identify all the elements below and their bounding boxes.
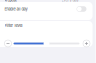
button[interactable]: Enable all day: [0, 2, 92, 16]
staticText: Filter level: [4, 23, 22, 28]
button[interactable]: Increase filter level: [83, 40, 90, 47]
button[interactable]: Decrease filter level: [4, 40, 11, 47]
staticText: Repeat: [4, 0, 16, 2]
staticText: Every day: [61, 0, 78, 2]
staticText: Enable all day: [4, 7, 27, 11]
